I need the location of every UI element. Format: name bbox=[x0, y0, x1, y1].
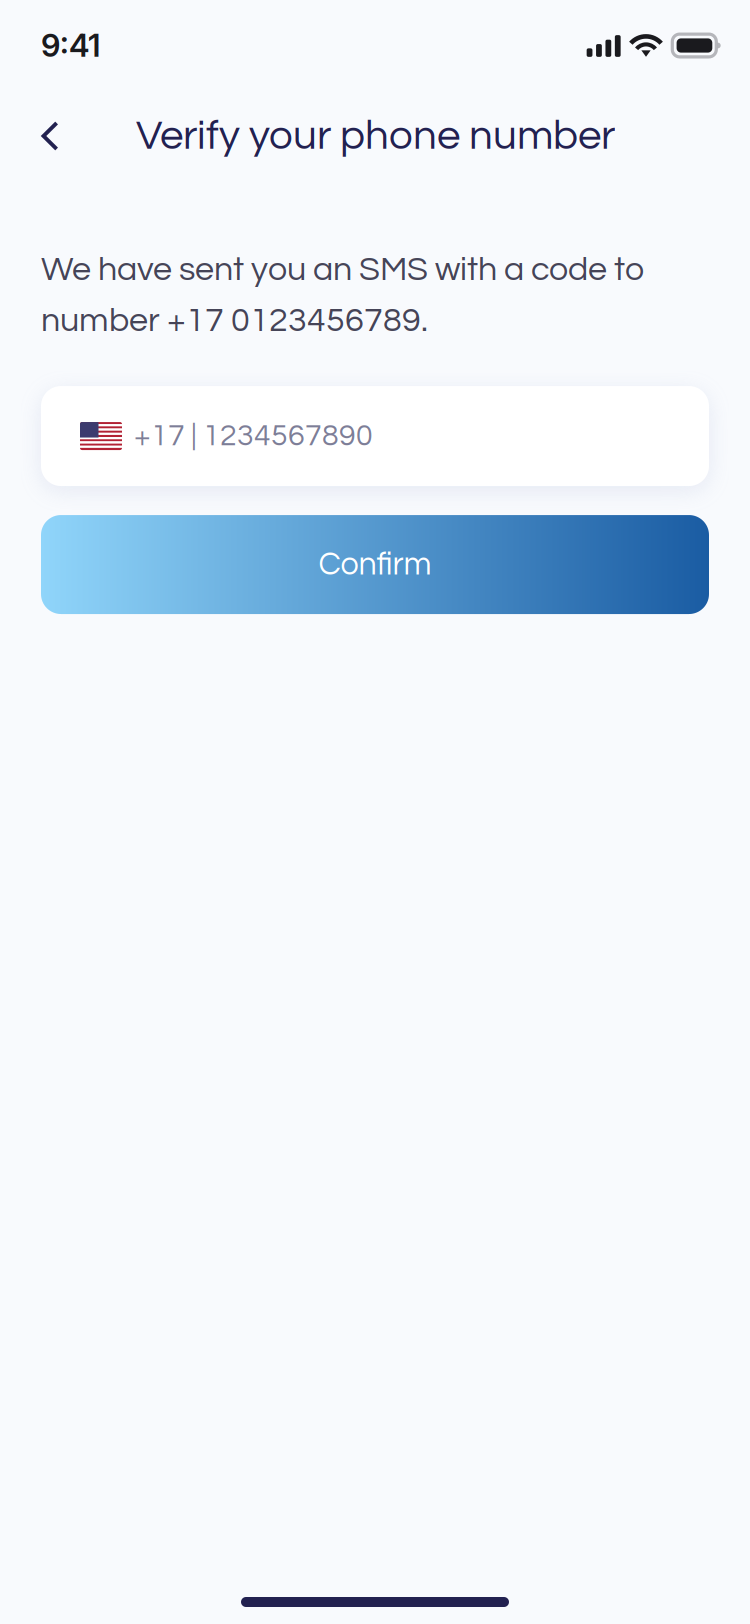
staticText: We have sent you an SMS with a code to n… bbox=[41, 252, 645, 338]
staticText: Verify your phone number bbox=[136, 114, 615, 158]
staticText: 9:41 bbox=[41, 27, 101, 64]
button[interactable]: Back bbox=[14, 97, 86, 175]
staticText: +17 | 1234567890 bbox=[134, 420, 373, 451]
button[interactable]: Confirm bbox=[41, 515, 709, 614]
staticText: Confirm bbox=[318, 548, 431, 581]
